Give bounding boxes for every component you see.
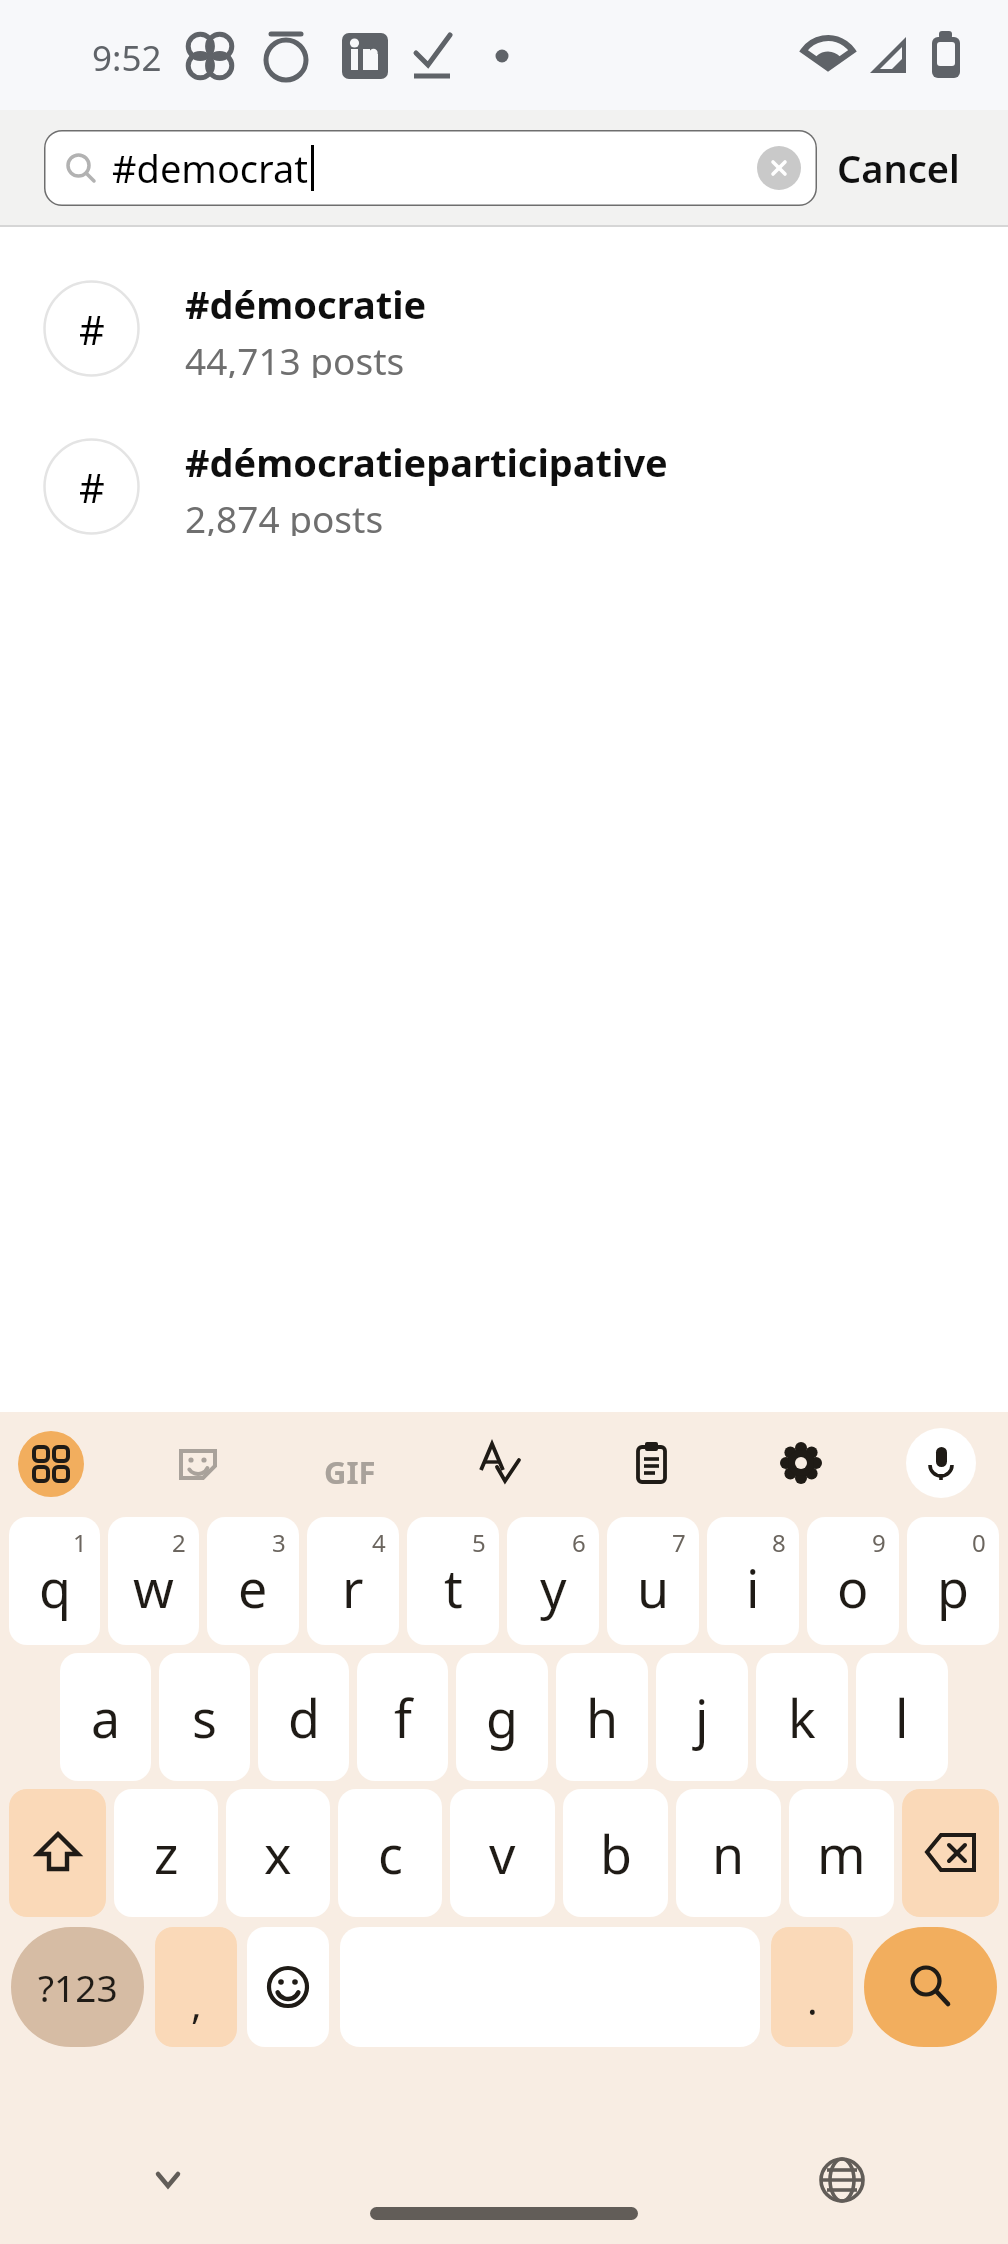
staticText: w — [133, 1552, 174, 1623]
button[interactable]: g — [456, 1653, 548, 1781]
staticText: c — [378, 1818, 403, 1889]
staticText: 4 — [372, 1526, 386, 1559]
button[interactable]: Backspace — [902, 1789, 999, 1917]
button[interactable]: o — [807, 1517, 899, 1645]
staticText: r — [342, 1552, 364, 1623]
button[interactable]: l — [856, 1653, 948, 1781]
button[interactable]: Spell check — [470, 1434, 528, 1492]
button[interactable]: Change language — [804, 2142, 880, 2218]
staticText: 7 — [672, 1526, 686, 1559]
button[interactable]: ?123 — [11, 1927, 144, 2047]
button[interactable]: d — [258, 1653, 349, 1781]
staticText: s — [192, 1682, 217, 1753]
button[interactable]: # — [0, 278, 1008, 378]
button[interactable]: Keyboard modes — [18, 1431, 84, 1497]
staticText: Cancel — [837, 142, 960, 194]
button[interactable]: # — [0, 436, 1008, 536]
staticText: m — [817, 1818, 866, 1889]
staticText: 8 — [772, 1526, 786, 1559]
staticText: a — [91, 1682, 121, 1753]
staticText: n — [712, 1818, 745, 1889]
button[interactable]: m — [789, 1789, 894, 1917]
staticText: 2 — [172, 1526, 186, 1559]
button[interactable]: y — [507, 1517, 599, 1645]
button[interactable]: a — [60, 1653, 151, 1781]
button[interactable]: GIF — [312, 1434, 388, 1510]
button[interactable]: r — [307, 1517, 399, 1645]
staticText: 0 — [972, 1526, 986, 1559]
staticText: y — [540, 1552, 567, 1623]
button[interactable]: #democrat — [44, 130, 817, 206]
staticText: i — [746, 1552, 760, 1623]
staticText: . — [807, 1972, 818, 2026]
staticText: p — [937, 1552, 969, 1623]
button[interactable]: k — [756, 1653, 848, 1781]
staticText: d — [288, 1682, 320, 1753]
staticText: GIF — [324, 1451, 376, 1493]
button[interactable]: x — [226, 1789, 330, 1917]
button[interactable]: Settings — [772, 1434, 830, 1492]
staticText: e — [238, 1552, 268, 1623]
button[interactable]: j — [656, 1653, 748, 1781]
button[interactable]: f — [357, 1653, 448, 1781]
button[interactable]: Hide keyboard — [130, 2142, 206, 2218]
button[interactable]: h — [556, 1653, 648, 1781]
button[interactable]: b — [563, 1789, 668, 1917]
button[interactable]: Clear — [757, 146, 801, 190]
button[interactable]: v — [450, 1789, 555, 1917]
button[interactable]: i — [707, 1517, 799, 1645]
button[interactable]: s — [159, 1653, 250, 1781]
staticText: 6 — [572, 1526, 586, 1559]
button[interactable]: Clipboard — [622, 1434, 680, 1492]
button[interactable]: Voice input — [906, 1428, 976, 1498]
staticText: q — [39, 1552, 71, 1623]
staticText: b — [600, 1818, 632, 1889]
staticText: ?123 — [38, 1962, 118, 2012]
button[interactable]: e — [207, 1517, 299, 1645]
staticText: x — [264, 1818, 292, 1889]
staticText: 2,874 posts — [185, 493, 384, 536]
button[interactable]: Search — [864, 1927, 997, 2047]
staticText: h — [586, 1682, 619, 1753]
staticText: 5 — [472, 1526, 486, 1559]
staticText: # — [79, 460, 105, 514]
staticText: g — [486, 1682, 518, 1753]
button[interactable]: , — [155, 1927, 237, 2047]
button[interactable]: t — [407, 1517, 499, 1645]
staticText: #démocratieparticipative — [185, 436, 668, 488]
staticText: o — [837, 1552, 869, 1623]
staticText: # — [79, 302, 105, 356]
staticText: t — [444, 1552, 463, 1623]
button[interactable]: w — [108, 1517, 199, 1645]
staticText: j — [695, 1682, 709, 1753]
staticText: k — [788, 1682, 816, 1753]
button[interactable]: z — [114, 1789, 218, 1917]
staticText: , — [191, 1976, 202, 2030]
button[interactable]: c — [338, 1789, 442, 1917]
staticText: 9 — [872, 1526, 886, 1559]
button[interactable]: Emoji — [247, 1927, 329, 2047]
staticText: z — [154, 1818, 179, 1889]
button[interactable]: Stickers — [170, 1436, 226, 1492]
button[interactable]: p — [907, 1517, 999, 1645]
staticText: l — [895, 1682, 909, 1753]
button[interactable]: n — [676, 1789, 781, 1917]
staticText: #democrat — [112, 142, 309, 194]
staticText: v — [489, 1818, 516, 1889]
button[interactable]: q — [9, 1517, 100, 1645]
staticText: f — [394, 1682, 412, 1753]
button[interactable]: Cancel — [817, 126, 980, 210]
staticText: 3 — [272, 1526, 286, 1559]
staticText: #démocratie — [185, 278, 427, 330]
staticText: 44,713 posts — [185, 335, 405, 378]
button[interactable]: u — [607, 1517, 699, 1645]
staticText: 9:52 — [92, 34, 162, 82]
button[interactable]: . — [771, 1927, 853, 2047]
button[interactable]: Shift — [9, 1789, 106, 1917]
staticText: u — [637, 1552, 670, 1623]
staticText: 1 — [73, 1526, 87, 1559]
